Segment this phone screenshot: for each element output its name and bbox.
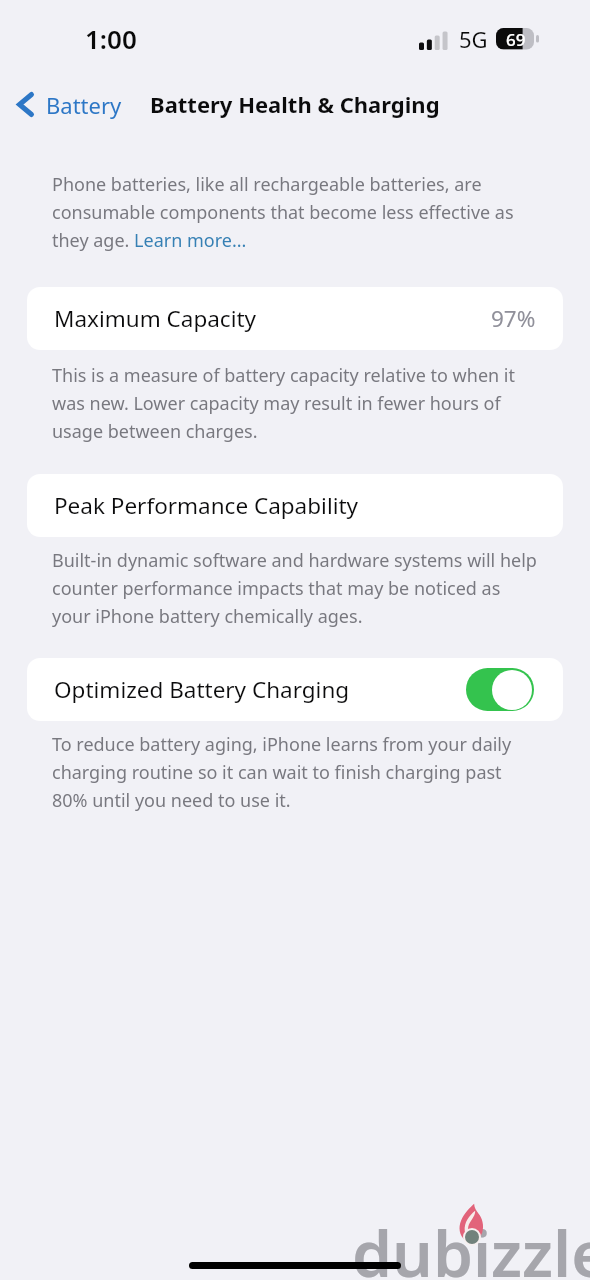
button[interactable]: Peak Performance Capability bbox=[27, 474, 563, 537]
staticText: This is a measure of battery capacity re… bbox=[52, 363, 541, 443]
staticText: Battery Health & Charging bbox=[150, 89, 440, 119]
staticText: 1:00 bbox=[85, 21, 137, 56]
staticText: 69 bbox=[506, 28, 526, 50]
staticText: Optimized Battery Charging bbox=[54, 674, 350, 705]
staticText: Built-in dynamic software and hardware s… bbox=[52, 548, 541, 628]
button[interactable]: Battery bbox=[0, 84, 130, 125]
staticText: 97% bbox=[491, 303, 536, 334]
staticText: To reduce battery aging, iPhone learns f… bbox=[52, 732, 541, 812]
button[interactable]: Maximum Capacity bbox=[27, 287, 563, 350]
staticText: Battery bbox=[46, 90, 122, 120]
staticText: Phone batteries, like all rechargeable b… bbox=[52, 172, 541, 252]
staticText: dubizzle bbox=[352, 1209, 590, 1280]
button[interactable]: Optimized Battery Charging bbox=[27, 658, 563, 721]
staticText: Peak Performance Capability bbox=[54, 490, 359, 521]
staticText: Maximum Capacity bbox=[54, 303, 257, 334]
staticText: 5G bbox=[459, 24, 488, 54]
button[interactable]: Optimized Battery Charging toggle, on bbox=[466, 668, 534, 711]
